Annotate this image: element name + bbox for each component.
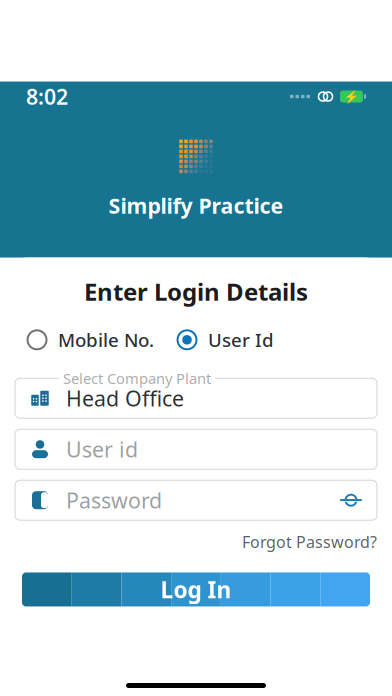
staticText: Head Office <box>66 384 184 412</box>
staticText: Simplify Practice <box>108 191 283 219</box>
staticText: Log In <box>160 574 231 604</box>
button[interactable]: User id <box>15 429 377 469</box>
staticText: Forgot Password? <box>242 531 377 552</box>
staticText: Password <box>66 486 162 514</box>
button[interactable]: User Id <box>176 323 274 356</box>
button[interactable]: Password <box>15 480 377 520</box>
staticText: ⚡ <box>344 90 359 103</box>
button[interactable]: Forgot Password? <box>242 527 377 556</box>
button[interactable]: Head Office <box>15 378 377 418</box>
staticText: User Id <box>208 327 274 352</box>
button[interactable]: Log In <box>22 572 370 606</box>
staticText: User id <box>66 435 138 463</box>
staticText: 8:02 <box>26 82 68 111</box>
staticText: Mobile No. <box>58 327 154 352</box>
button[interactable]: Mobile No. <box>26 323 154 356</box>
staticText: Select Company Plant <box>63 368 211 388</box>
staticText: Enter Login Details <box>84 275 308 307</box>
